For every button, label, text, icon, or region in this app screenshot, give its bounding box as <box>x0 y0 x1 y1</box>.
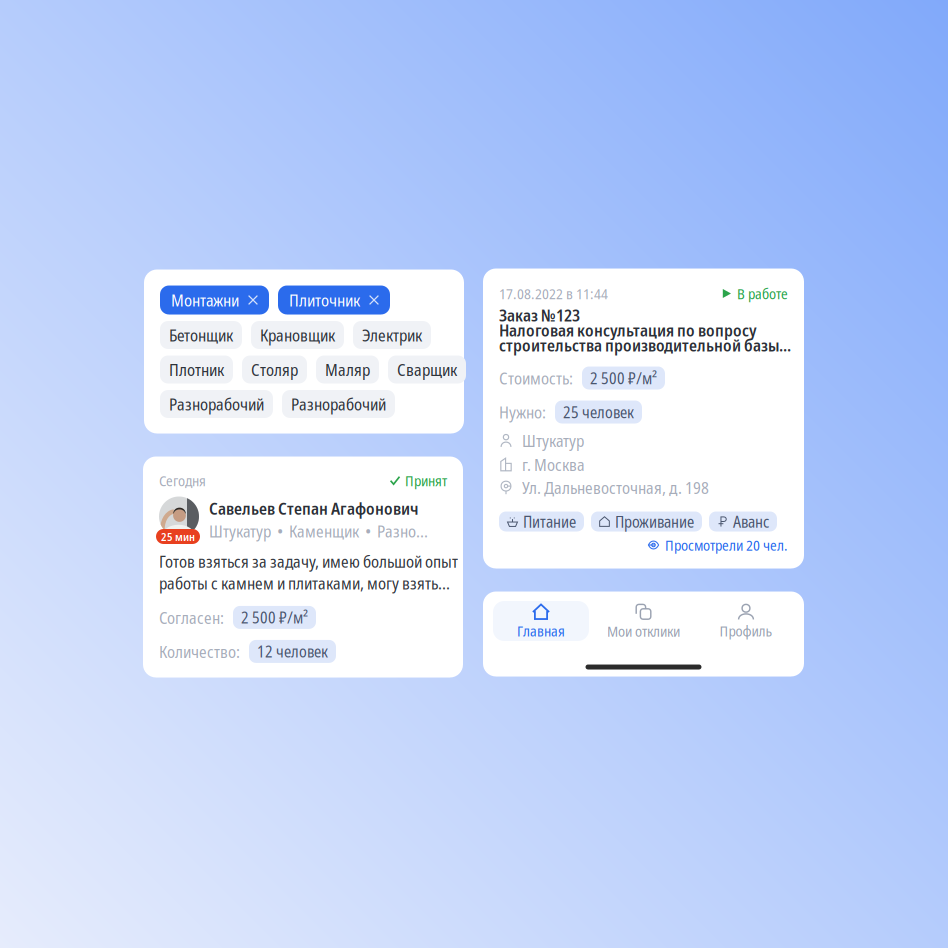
staticText: Главная <box>517 623 565 639</box>
button[interactable]: Сварщик <box>388 355 466 383</box>
button[interactable]: Монтажни <box>160 285 269 314</box>
staticText: Профиль <box>719 623 772 639</box>
staticText: Плиточник <box>289 291 360 309</box>
staticText: Штукатур • Каменщик • Разно... <box>209 522 428 540</box>
staticText: г. Москва <box>522 456 585 473</box>
button[interactable]: Разнорабочий <box>282 390 395 418</box>
staticText: Столяр <box>251 361 298 378</box>
staticText: Просмотрели 20 чел. <box>665 537 788 553</box>
staticText: Плотник <box>169 361 224 378</box>
staticText: Питание <box>523 513 576 530</box>
staticText: Разнорабочий <box>169 395 264 413</box>
button[interactable]: Мои отклики <box>593 601 693 641</box>
staticText: 2 500 ₽/м² <box>590 369 657 386</box>
staticText: 25 человек <box>563 403 634 420</box>
staticText: Монтажни <box>171 291 239 309</box>
button[interactable]: Маляр <box>316 355 379 383</box>
staticText: Нужно: <box>499 403 546 421</box>
staticText: Количество: <box>159 643 240 660</box>
staticText: Электрик <box>362 326 422 344</box>
staticText: Стоимость: <box>499 369 573 387</box>
staticText: Ул. Дальневосточная, д. 198 <box>522 479 709 496</box>
button[interactable]: Бетонщик <box>160 321 242 349</box>
staticText: Маляр <box>325 361 370 378</box>
staticText: Проживание <box>615 513 694 530</box>
staticText: Штукатур <box>522 432 584 449</box>
staticText: Савельев Степан Агафонович <box>209 499 419 517</box>
staticText: Мои отклики <box>607 623 680 639</box>
button[interactable]: Плиточник <box>278 285 390 314</box>
staticText: В работе <box>737 286 788 301</box>
button[interactable]: Разнорабочий <box>160 390 273 418</box>
button[interactable]: Плотник <box>160 355 233 383</box>
staticText: работы с камнем и плитаками, могу взять.… <box>159 574 450 592</box>
button[interactable]: Электрик <box>353 321 431 349</box>
staticText: Согласен: <box>159 609 224 626</box>
staticText: Готов взяться за задачу, имею большой оп… <box>159 552 458 570</box>
button[interactable]: Крановщик <box>251 321 344 349</box>
button[interactable]: Главная <box>493 601 589 641</box>
staticText: Разнорабочий <box>291 395 386 413</box>
button[interactable]: Столяр <box>242 355 307 383</box>
staticText: Принят <box>405 473 447 488</box>
button[interactable]: Профиль <box>698 601 794 641</box>
staticText: Сегодня <box>159 473 206 488</box>
staticText: Аванс <box>733 513 769 530</box>
staticText: Налоговая консультация по вопросу <box>499 321 757 339</box>
staticText: Сварщик <box>397 361 457 378</box>
staticText: 17.08.2022 в 11:44 <box>499 286 608 301</box>
staticText: строительства производительной базы... <box>499 336 791 354</box>
staticText: Заказ №123 <box>499 306 580 324</box>
staticText: 25 мин <box>161 530 195 542</box>
staticText: 2 500 ₽/м² <box>241 609 308 626</box>
staticText: Бетонщик <box>169 326 233 344</box>
staticText: Крановщик <box>260 326 335 344</box>
staticText: 12 человек <box>257 643 328 660</box>
